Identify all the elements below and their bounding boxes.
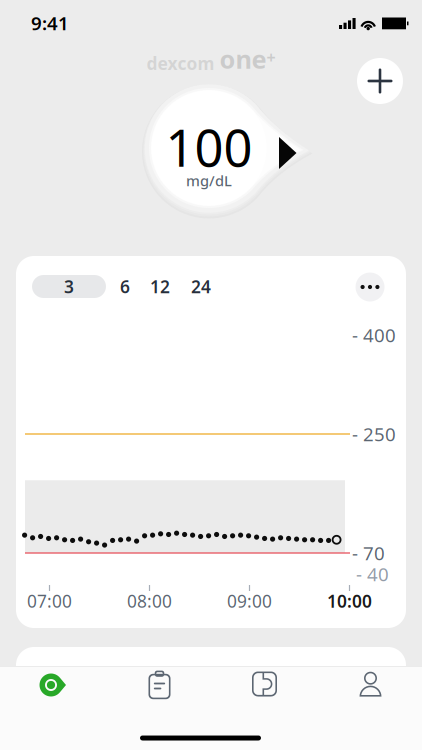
staticText: 12: [150, 275, 170, 298]
staticText: - 40: [356, 562, 389, 586]
button[interactable]: 3: [32, 275, 106, 298]
button[interactable]: Glucose: [2, 662, 107, 708]
button[interactable]: More options: [352, 269, 388, 305]
staticText: 10:00: [327, 589, 372, 612]
staticText: +: [266, 47, 275, 68]
staticText: mg/dL: [186, 171, 232, 190]
button[interactable]: Add event: [351, 52, 409, 110]
button[interactable]: 24: [186, 275, 216, 298]
staticText: one: [219, 42, 266, 76]
button[interactable]: 12: [145, 275, 175, 298]
button[interactable]: 6: [110, 275, 140, 298]
button[interactable]: Reports: [107, 662, 212, 708]
button[interactable]: Profile: [317, 662, 422, 708]
staticText: 9:41: [31, 11, 69, 35]
button[interactable]: Connections: [212, 662, 317, 708]
staticText: 100: [165, 113, 252, 181]
staticText: 3: [64, 275, 74, 298]
staticText: dexcom: [146, 52, 214, 75]
staticText: - 400: [352, 323, 396, 347]
staticText: 09:00: [227, 589, 272, 612]
staticText: 08:00: [127, 589, 172, 612]
staticText: 24: [191, 275, 211, 298]
staticText: - 70: [352, 541, 385, 565]
staticText: 07:00: [27, 589, 72, 612]
staticText: - 250: [352, 422, 396, 446]
staticText: 6: [120, 275, 130, 298]
